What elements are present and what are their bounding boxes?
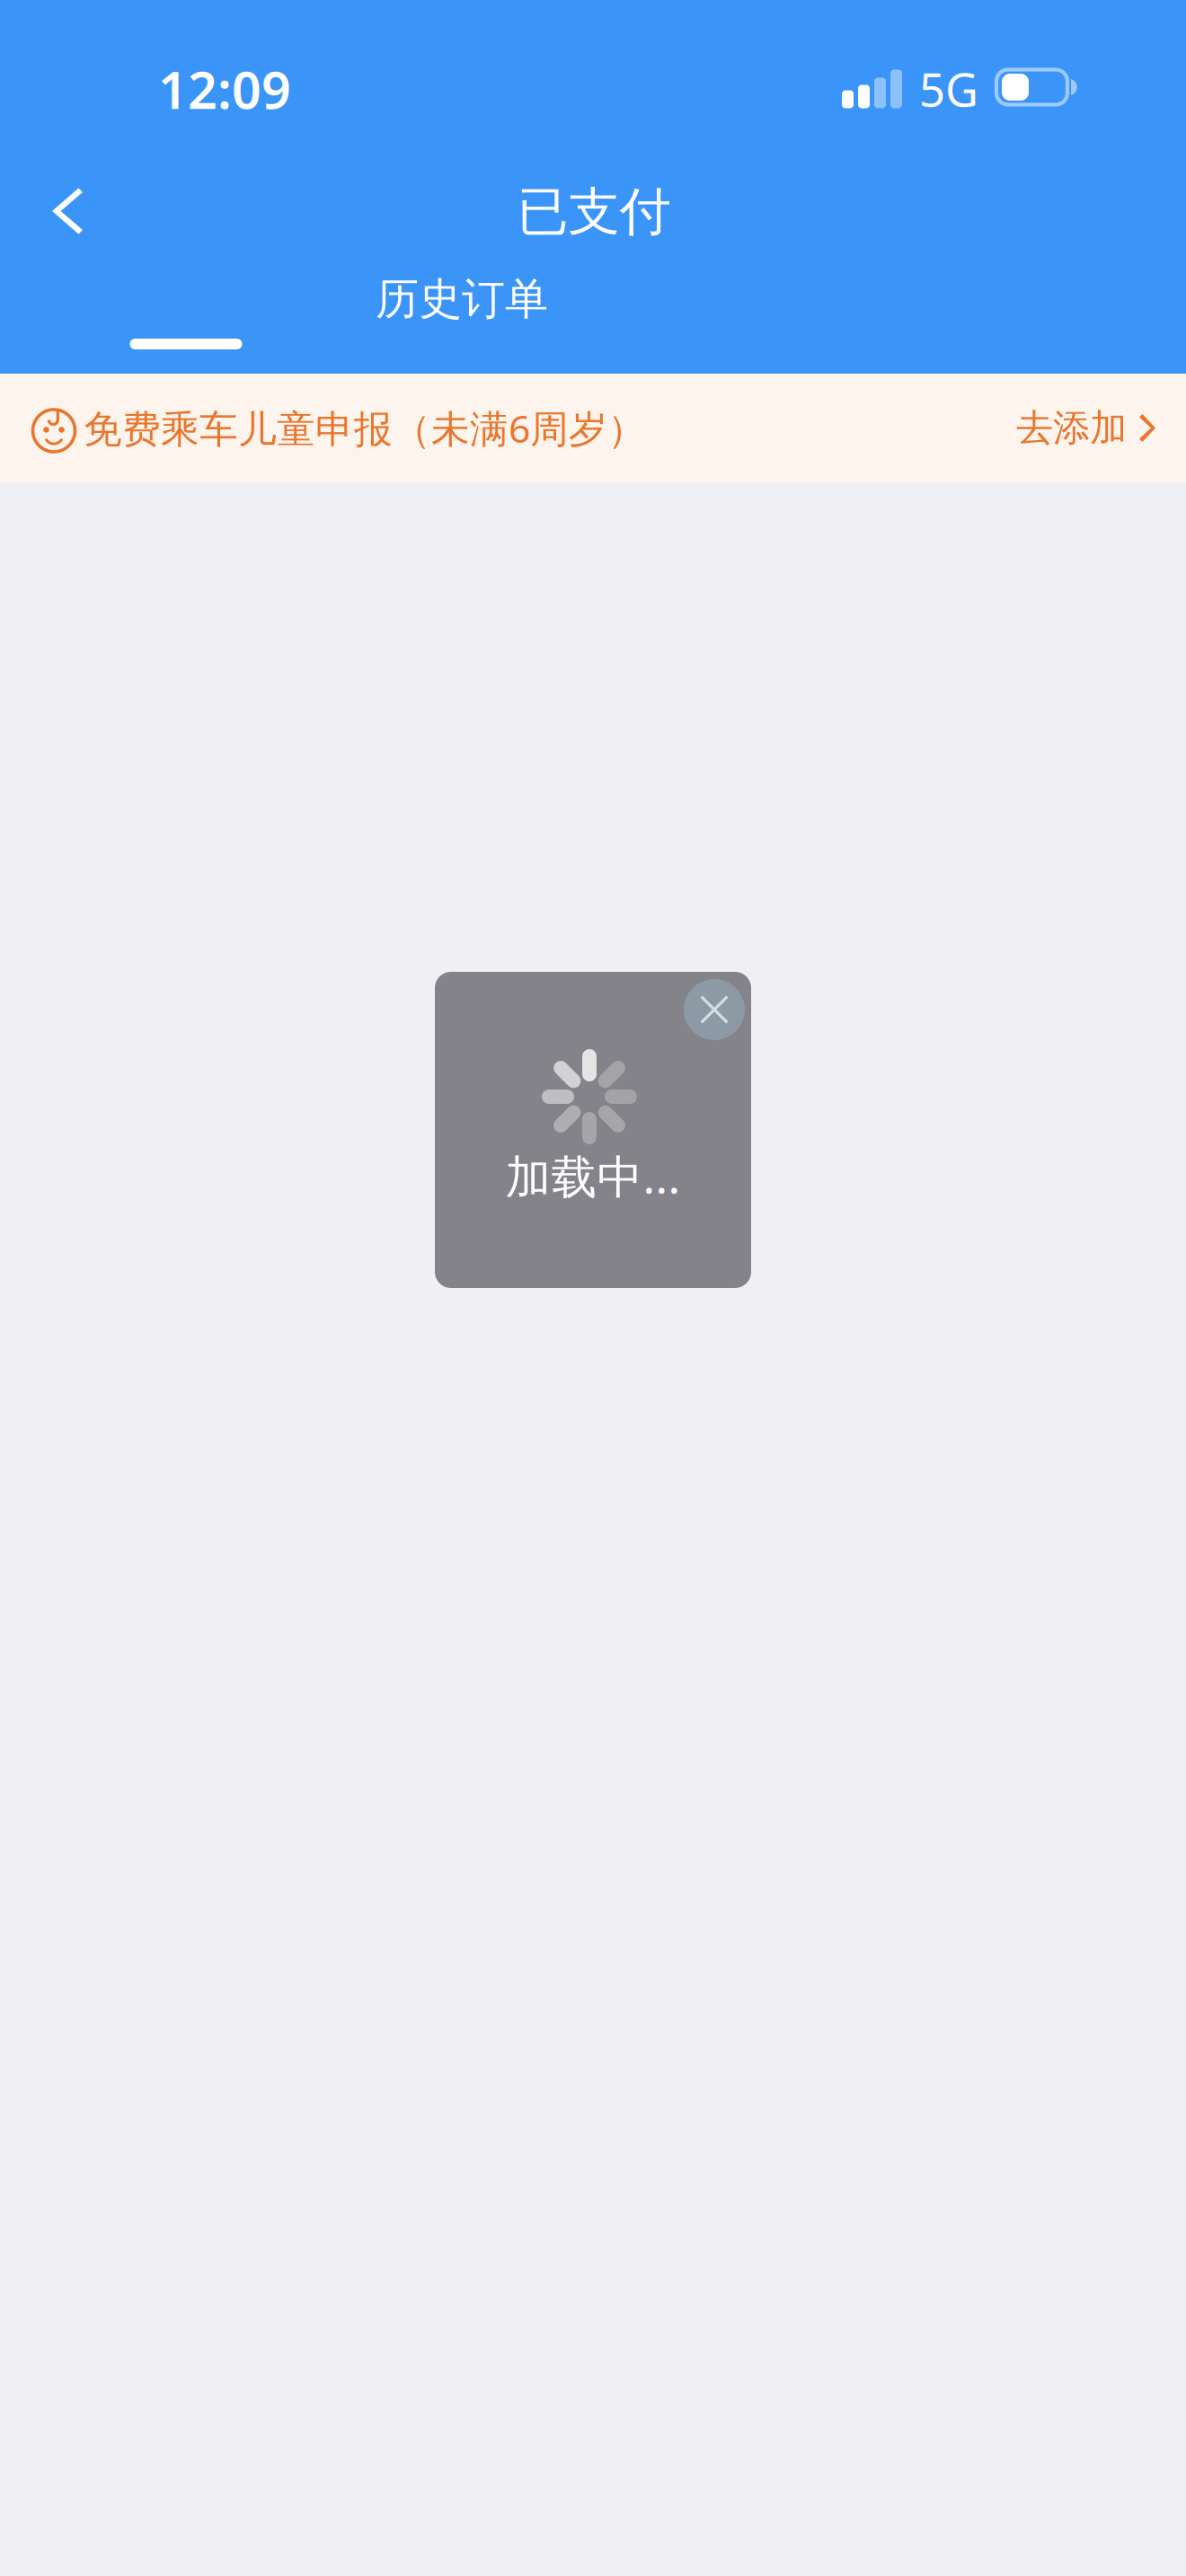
staticText: 已支付 bbox=[517, 180, 671, 244]
button[interactable]: 返回 bbox=[13, 162, 120, 260]
staticText: 12:09 bbox=[158, 55, 291, 123]
staticText: 历史订单 bbox=[376, 273, 548, 326]
staticText: 免费乘车儿童申报（未满6周岁） bbox=[84, 403, 646, 453]
staticText: 去添加 bbox=[1016, 405, 1127, 451]
staticText: 加载中... bbox=[505, 1146, 681, 1206]
button[interactable]: 免费乘车儿童申报（未满6周岁） bbox=[0, 374, 1186, 482]
button[interactable]: 历史订单 bbox=[345, 258, 579, 340]
staticText: 5G bbox=[919, 59, 978, 119]
button[interactable]: 已支付 bbox=[70, 258, 304, 340]
button[interactable]: 关闭 bbox=[673, 968, 756, 1051]
